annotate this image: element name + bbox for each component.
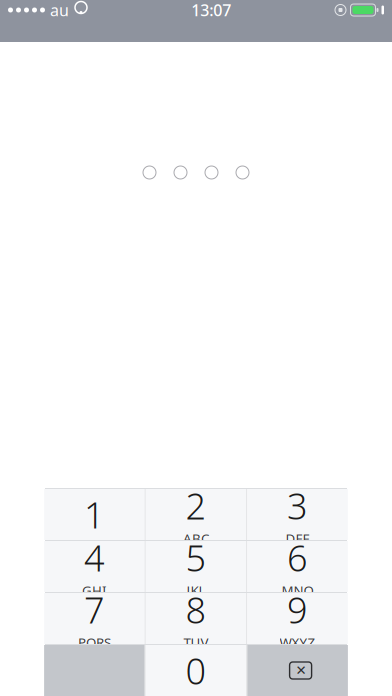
staticText: 4 (84, 534, 105, 581)
button[interactable]: 1 (44, 489, 145, 540)
staticText: 6 (287, 534, 308, 581)
staticText: 1 (84, 491, 105, 538)
staticText: 7 (84, 586, 105, 633)
staticText: au (50, 0, 69, 21)
staticText: 3 (287, 482, 308, 529)
button[interactable]: 4 (44, 541, 145, 592)
button[interactable]: 0 (146, 645, 246, 696)
staticText: WXYZ (280, 634, 316, 651)
staticText: TUV (183, 634, 208, 651)
staticText: 0 (185, 647, 206, 694)
button[interactable]: 7 (44, 593, 145, 644)
staticText: 5 (185, 534, 206, 581)
staticText: 9 (287, 586, 308, 633)
button[interactable]: 2 (146, 489, 246, 540)
staticText: 2 (185, 482, 206, 529)
staticText: ABC (183, 530, 209, 547)
button[interactable]: 6 (247, 541, 348, 592)
button[interactable]: 8 (146, 593, 246, 644)
button[interactable]: 3 (247, 489, 348, 540)
staticText: 8 (185, 586, 206, 633)
staticText: ✕ (296, 663, 307, 678)
button[interactable]: 9 (247, 593, 348, 644)
staticText: JKL (186, 582, 205, 599)
staticText: 13:07 (191, 0, 231, 21)
staticText: MNO (282, 582, 314, 599)
button[interactable]: Delete (247, 645, 348, 696)
staticText: GHI (82, 582, 107, 599)
staticText: PQRS (78, 634, 111, 651)
button[interactable]: 5 (146, 541, 246, 592)
staticText: DEF (286, 530, 310, 547)
